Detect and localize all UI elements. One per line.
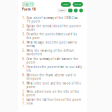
staticText: 8. (22, 73, 25, 77)
staticText: Poem 18 (22, 8, 36, 11)
staticText: Get Link (63, 3, 68, 5)
staticText: What message does the poet want to conve… (26, 41, 77, 48)
button[interactable]: Get Link (61, 2, 71, 7)
staticText: New Topic (74, 3, 81, 5)
button[interactable]: New Topic (73, 2, 83, 7)
staticText: What is the tone and the mood of this po… (26, 82, 80, 89)
staticText: 6. (22, 57, 25, 61)
staticText: Mention the rhyme scheme used in this po… (26, 73, 76, 81)
staticText: Write a short note on the title of the p… (26, 90, 79, 97)
staticText: 9. (22, 82, 25, 85)
staticText: Explain the central idea of the poem in … (26, 24, 81, 31)
staticText: 7. (22, 65, 25, 69)
staticText: Write the meaning of the difficult words… (26, 49, 74, 56)
button[interactable]: Share (74, 9, 78, 12)
staticText: 5. (22, 49, 25, 52)
staticText: 10. (22, 90, 25, 97)
staticText: 1. (22, 16, 25, 20)
staticText: Class 10 (23, 3, 34, 6)
staticText: 2. (22, 24, 25, 28)
staticText: How does the poem relate to our daily li… (26, 65, 81, 72)
staticText: 3. (22, 33, 25, 36)
button[interactable]: Save (79, 9, 83, 12)
staticText: 4. (22, 41, 25, 44)
staticText: 11. (22, 98, 25, 105)
button[interactable]: Video (68, 9, 72, 12)
staticText: Give a brief summary of the CBSE Class 1… (26, 16, 77, 23)
staticText: Explain the last four lines of the poem … (26, 98, 80, 105)
staticText: Give the summary of each stanza in the p… (26, 57, 78, 64)
staticText: Solutions (59, 10, 65, 11)
staticText: Describe the poetic devices used by the … (26, 33, 76, 40)
